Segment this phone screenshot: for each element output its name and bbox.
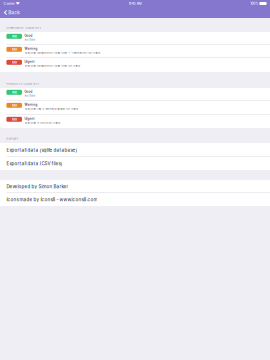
- staticText: Warning: [25, 47, 38, 50]
- button[interactable]: Back: [0, 7, 27, 18]
- staticText: 100: [12, 34, 17, 38]
- staticText: 100: [12, 60, 17, 64]
- button[interactable]: Export all data (CSV files): [0, 157, 270, 170]
- staticText: Urgent: [25, 60, 35, 63]
- staticText: 100: [12, 90, 17, 94]
- staticText: Less than component lead time on hand: [25, 64, 81, 67]
- staticText: Good: [25, 90, 33, 93]
- staticText: Warning: [25, 103, 38, 106]
- staticText: Back: [8, 10, 20, 15]
- staticText: 100%: [250, 1, 258, 5]
- staticText: Carrier: [3, 1, 14, 6]
- button[interactable]: Export all data (sqlite database): [0, 143, 270, 157]
- staticText: All fine: [25, 94, 36, 97]
- staticText: Export all data (CSV files): [6, 161, 62, 166]
- staticText: 100: [12, 117, 17, 121]
- staticText: Icons made by Icons8 - www.icons8.com: [6, 197, 97, 202]
- staticText: All fine: [25, 38, 36, 41]
- staticText: Urgent: [25, 117, 35, 120]
- staticText: Less than 0 units on hand: [25, 121, 61, 124]
- staticText: 11:45 AM: [129, 1, 142, 6]
- button[interactable]: Icons made by Icons8 - www.icons8.com: [0, 193, 270, 206]
- staticText: 100: [12, 103, 17, 107]
- staticText: Export all data (sqlite database): [6, 147, 77, 153]
- staticText: 100: [12, 47, 17, 51]
- staticText: COMPONENT COLOR KEY: [6, 26, 41, 29]
- staticText: PRODUCTS COLOR KEY: [6, 82, 39, 85]
- staticText: Developed by Simon Barker: [6, 184, 68, 189]
- staticText: Less than last 3 weeks dispatch on hand: [25, 107, 79, 110]
- staticText: Good: [25, 34, 33, 37]
- staticText: Less than component lead time + 1 weeks …: [25, 51, 101, 54]
- button[interactable]: Developed by Simon Barker: [0, 180, 270, 193]
- staticText: EXPORT: [6, 137, 18, 140]
